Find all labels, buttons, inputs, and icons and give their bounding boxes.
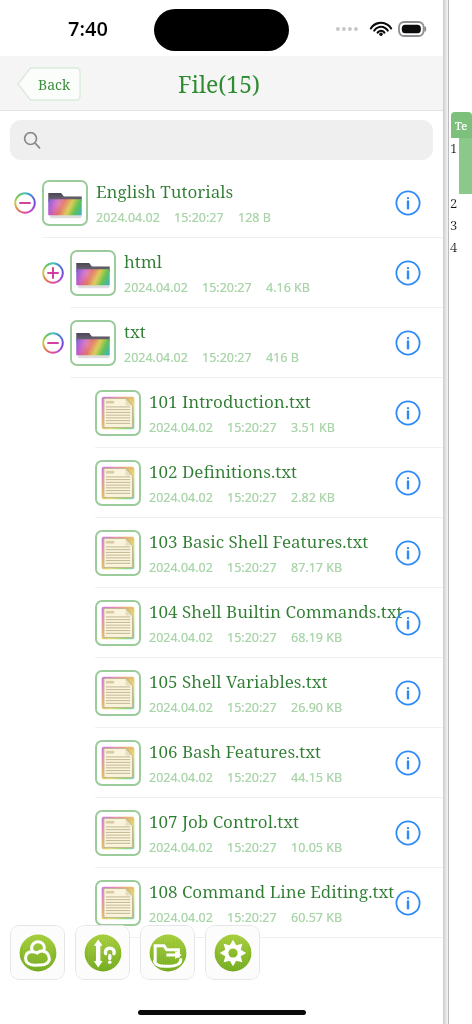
button[interactable]: Info xyxy=(391,676,425,710)
staticText: 2.82 KB xyxy=(291,489,335,506)
button[interactable]: Search xyxy=(10,120,433,160)
staticText: 4.16 KB xyxy=(266,279,310,296)
button[interactable]: 104 Shell Builtin Commands.txt xyxy=(0,588,443,658)
button[interactable]: Expand xyxy=(0,238,443,308)
button[interactable]: 101 Introduction.txt xyxy=(0,378,443,448)
staticText: 416 B xyxy=(266,349,299,366)
button[interactable]: 107 Job Control.txt xyxy=(0,798,443,868)
staticText: Te xyxy=(455,118,468,133)
button[interactable]: Settings xyxy=(205,925,260,980)
button[interactable]: Info xyxy=(391,746,425,780)
staticText: 103 Basic Shell Features.txt xyxy=(149,530,369,553)
staticText: 60.57 KB xyxy=(291,909,343,926)
button[interactable]: Back xyxy=(18,68,80,100)
button[interactable]: Collapse xyxy=(0,308,443,378)
staticText: 7:40 xyxy=(68,15,108,42)
staticText: 102 Definitions.txt xyxy=(149,460,297,483)
staticText: 44.15 KB xyxy=(291,769,343,786)
staticText: 15:20:27 xyxy=(202,349,252,366)
staticText: 15:20:27 xyxy=(227,419,277,436)
staticText: 2024.04.02 xyxy=(124,349,188,366)
button[interactable]: Collapse xyxy=(38,328,68,358)
button[interactable]: Open folder xyxy=(140,925,195,980)
staticText: 4 xyxy=(450,238,458,256)
button[interactable]: 102 Definitions.txt xyxy=(0,448,443,518)
staticText: 128 B xyxy=(238,209,271,226)
staticText: 15:20:27 xyxy=(174,209,224,226)
button[interactable]: 105 Shell Variables.txt xyxy=(0,658,443,728)
staticText: English Tutorials xyxy=(96,180,234,203)
staticText: 15:20:27 xyxy=(227,559,277,576)
staticText: 3.51 KB xyxy=(291,419,335,436)
button[interactable]: Info xyxy=(391,536,425,570)
button[interactable]: Info xyxy=(391,466,425,500)
staticText: 2024.04.02 xyxy=(149,769,213,786)
staticText: 2 xyxy=(450,194,458,212)
staticText: 87.17 KB xyxy=(291,559,343,576)
staticText: 15:20:27 xyxy=(202,279,252,296)
staticText: 2024.04.02 xyxy=(149,629,213,646)
staticText: 10.05 KB xyxy=(291,839,343,856)
staticText: 2024.04.02 xyxy=(124,279,188,296)
staticText: 106 Bash Features.txt xyxy=(149,740,322,763)
button[interactable]: 108 Command Line Editing.txt xyxy=(0,868,443,938)
staticText: 26.90 KB xyxy=(291,699,343,716)
button[interactable]: Collapse xyxy=(0,168,443,238)
button[interactable]: Info xyxy=(391,886,425,920)
button[interactable]: Transfer xyxy=(75,925,130,980)
staticText: html xyxy=(124,250,163,273)
button[interactable]: Info xyxy=(391,396,425,430)
staticText: 2024.04.02 xyxy=(149,839,213,856)
staticText: 15:20:27 xyxy=(227,909,277,926)
button[interactable]: Info xyxy=(391,326,425,360)
button[interactable]: Info xyxy=(391,256,425,290)
staticText: 2024.04.02 xyxy=(149,909,213,926)
staticText: 108 Command Line Editing.txt xyxy=(149,880,395,903)
staticText: 2024.04.02 xyxy=(149,559,213,576)
staticText: 68.19 KB xyxy=(291,629,343,646)
button[interactable]: Cloud xyxy=(10,925,65,980)
staticText: 15:20:27 xyxy=(227,839,277,856)
staticText: 15:20:27 xyxy=(227,699,277,716)
staticText: 1 xyxy=(450,139,458,157)
button[interactable]: 103 Basic Shell Features.txt xyxy=(0,518,443,588)
staticText: 101 Introduction.txt xyxy=(149,390,311,413)
staticText: 15:20:27 xyxy=(227,629,277,646)
button[interactable]: Expand xyxy=(38,258,68,288)
staticText: Back xyxy=(38,75,71,94)
staticText: 107 Job Control.txt xyxy=(149,810,299,833)
staticText: 2024.04.02 xyxy=(149,419,213,436)
staticText: txt xyxy=(124,320,146,343)
staticText: 2024.04.02 xyxy=(149,699,213,716)
button[interactable]: 106 Bash Features.txt xyxy=(0,728,443,798)
staticText: 2024.04.02 xyxy=(149,489,213,506)
staticText: 105 Shell Variables.txt xyxy=(149,670,328,693)
button[interactable]: Info xyxy=(391,606,425,640)
staticText: File(15) xyxy=(178,68,260,99)
staticText: 15:20:27 xyxy=(227,769,277,786)
button[interactable]: Info xyxy=(391,816,425,850)
button[interactable]: Collapse xyxy=(10,188,40,218)
button[interactable]: Info xyxy=(391,186,425,220)
staticText: 2024.04.02 xyxy=(96,209,160,226)
staticText: 104 Shell Builtin Commands.txt xyxy=(149,600,403,623)
staticText: 15:20:27 xyxy=(227,489,277,506)
staticText: 3 xyxy=(450,216,458,234)
